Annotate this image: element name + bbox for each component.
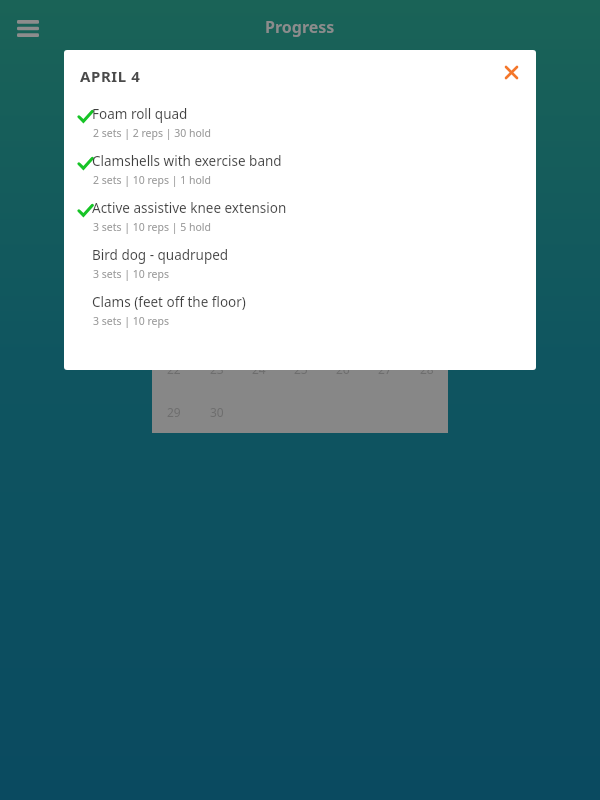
staticText: Active assistive knee extension (92, 199, 287, 217)
staticText: 30 (210, 404, 224, 420)
staticText: Foam roll quad (92, 105, 188, 123)
staticText: 2 sets | 10 reps | 1 hold (93, 173, 212, 187)
button[interactable]: Clamshells with exercise band (64, 149, 536, 196)
staticText: 28 (420, 361, 434, 377)
button[interactable]: Close (494, 55, 528, 89)
staticText: 22 (167, 361, 181, 377)
button[interactable]: Foam roll quad (64, 102, 536, 149)
staticText: Clams (feet off the floor) (92, 293, 246, 311)
button[interactable]: Open navigation menu (8, 8, 48, 48)
staticText: 24 (252, 361, 266, 377)
staticText: Bird dog - quadruped (92, 246, 229, 264)
button[interactable]: Bird dog - quadruped (64, 243, 536, 290)
staticText: 26 (336, 361, 350, 377)
staticText: 25 (294, 361, 308, 377)
staticText: Progress (265, 16, 335, 38)
button[interactable]: Active assistive knee extension (64, 196, 536, 243)
staticText: 23 (210, 361, 224, 377)
staticText: 2 sets | 2 reps | 30 hold (93, 126, 212, 140)
staticText: 3 sets | 10 reps (93, 267, 170, 281)
staticText: 29 (167, 404, 181, 420)
staticText: Clamshells with exercise band (92, 152, 282, 170)
staticText: APRIL 4 (80, 66, 141, 86)
staticText: 3 sets | 10 reps (93, 314, 170, 328)
staticText: 3 sets | 10 reps | 5 hold (93, 220, 212, 234)
button[interactable]: Clams (feet off the floor) (64, 290, 536, 337)
staticText: 27 (378, 361, 392, 377)
